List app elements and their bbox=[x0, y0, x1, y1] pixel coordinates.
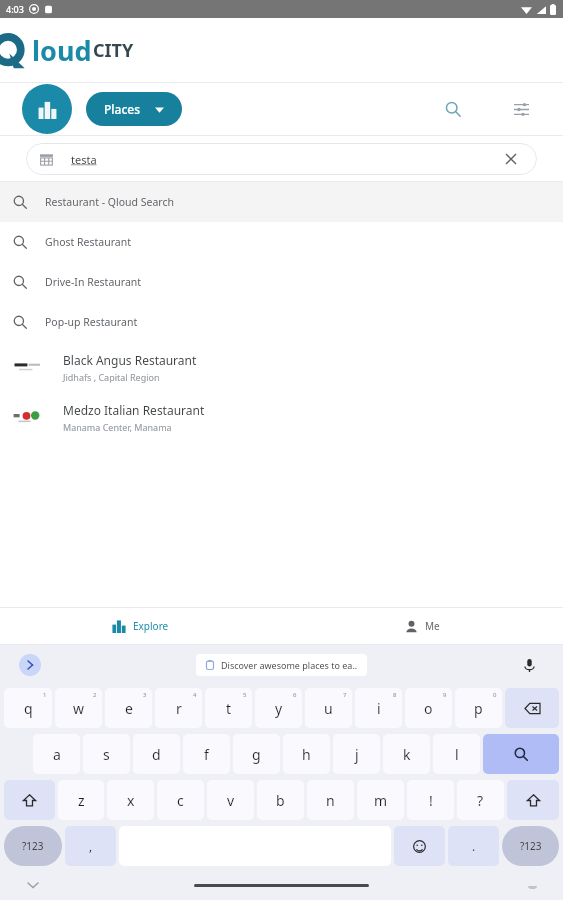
button[interactable]: ?123 bbox=[502, 826, 559, 866]
staticText: 3 bbox=[143, 691, 147, 699]
button[interactable]: c bbox=[157, 780, 204, 820]
button[interactable]: v bbox=[207, 780, 254, 820]
button[interactable]: testa bbox=[26, 143, 537, 175]
button[interactable]: More suggestions bbox=[19, 654, 41, 676]
button[interactable]: City bbox=[22, 84, 72, 134]
button[interactable]: j bbox=[333, 734, 380, 774]
button[interactable]: ! bbox=[407, 780, 454, 820]
staticText: , bbox=[89, 838, 93, 854]
button[interactable]: . bbox=[448, 826, 499, 866]
staticText: loud bbox=[32, 32, 92, 69]
button[interactable]: Discover awesome places to ea.. bbox=[196, 654, 367, 676]
button[interactable]: f bbox=[183, 734, 230, 774]
staticText: ?123 bbox=[22, 839, 44, 853]
button[interactable]: Filter bbox=[501, 89, 541, 129]
button[interactable]: Recents bbox=[523, 876, 541, 894]
staticText: d bbox=[152, 745, 161, 764]
staticText: testa bbox=[71, 152, 97, 167]
staticText: 5 bbox=[243, 691, 247, 699]
button[interactable]: y bbox=[255, 688, 302, 728]
staticText: . bbox=[472, 838, 476, 854]
button[interactable]: z bbox=[58, 780, 104, 820]
button[interactable]: Shift bbox=[4, 780, 55, 820]
staticText: ?123 bbox=[520, 839, 542, 853]
staticText: Manama Center, Manama bbox=[63, 421, 172, 433]
staticText: u bbox=[324, 699, 333, 718]
staticText: j bbox=[355, 745, 359, 764]
button[interactable]: n bbox=[307, 780, 354, 820]
button[interactable]: s bbox=[83, 734, 130, 774]
staticText: Black Angus Restaurant bbox=[63, 352, 197, 368]
button[interactable]: Clear bbox=[499, 147, 523, 171]
button[interactable]: m bbox=[357, 780, 404, 820]
staticText: k bbox=[403, 745, 411, 764]
staticText: x bbox=[127, 791, 135, 810]
button[interactable]: Voice input bbox=[516, 652, 542, 678]
button[interactable]: Search bbox=[433, 89, 473, 129]
staticText: 6 bbox=[293, 691, 297, 699]
button[interactable]: e bbox=[105, 688, 152, 728]
button[interactable]: Me bbox=[281, 608, 563, 644]
staticText: g bbox=[252, 745, 261, 764]
button[interactable]: Drive-In Restaurant bbox=[0, 262, 563, 302]
button[interactable]: Search bbox=[483, 734, 559, 774]
button[interactable]: k bbox=[383, 734, 430, 774]
staticText: n bbox=[326, 791, 335, 810]
button[interactable]: o bbox=[405, 688, 452, 728]
staticText: Restaurant - Qloud Search bbox=[45, 195, 174, 209]
button[interactable]: q bbox=[4, 688, 52, 728]
button[interactable]: x bbox=[107, 780, 154, 820]
staticText: y bbox=[275, 699, 283, 718]
staticText: f bbox=[204, 745, 209, 764]
staticText: s bbox=[103, 745, 110, 764]
button[interactable]: Restaurant - Qloud Search bbox=[0, 182, 563, 222]
staticText: 8 bbox=[393, 691, 397, 699]
staticText: i bbox=[377, 699, 381, 718]
button[interactable]: ?123 bbox=[4, 826, 62, 866]
button[interactable]: Pop-up Restaurant bbox=[0, 302, 563, 342]
button[interactable]: a bbox=[33, 734, 80, 774]
staticText: 4 bbox=[193, 691, 197, 699]
staticText: q bbox=[24, 699, 33, 718]
staticText: CITY bbox=[93, 38, 134, 63]
button[interactable]: r bbox=[155, 688, 202, 728]
button[interactable]: t bbox=[205, 688, 252, 728]
staticText: ? bbox=[477, 791, 484, 810]
staticText: r bbox=[176, 699, 182, 718]
staticText: Places bbox=[104, 101, 141, 117]
staticText: m bbox=[374, 791, 388, 810]
button[interactable]: Shift bbox=[507, 780, 559, 820]
button[interactable]: Ghost Restaurant bbox=[0, 222, 563, 262]
button[interactable]: Backspace bbox=[505, 688, 559, 728]
button[interactable]: Hide keyboard bbox=[22, 874, 44, 896]
button[interactable]: g bbox=[233, 734, 280, 774]
staticText: Medzo Italian Restaurant bbox=[63, 402, 205, 418]
staticText: z bbox=[78, 791, 85, 810]
button[interactable]: Places bbox=[86, 92, 182, 126]
button[interactable]: Medzo Italian Restaurant bbox=[0, 392, 563, 442]
staticText: 4:03 bbox=[6, 3, 24, 15]
button[interactable]: Explore bbox=[0, 608, 281, 644]
staticText: Discover awesome places to ea.. bbox=[221, 659, 358, 671]
button[interactable]: ? bbox=[457, 780, 504, 820]
button[interactable]: w bbox=[55, 688, 102, 728]
staticText: Drive-In Restaurant bbox=[45, 275, 142, 289]
button[interactable]: , bbox=[65, 826, 116, 866]
staticText: Jidhafs , Capital Region bbox=[63, 371, 160, 383]
button[interactable]: l bbox=[433, 734, 480, 774]
button[interactable]: i bbox=[355, 688, 402, 728]
button[interactable]: Emoji bbox=[394, 826, 445, 866]
staticText: Explore bbox=[133, 619, 169, 633]
button[interactable]: u bbox=[305, 688, 352, 728]
staticText: Me bbox=[425, 619, 440, 633]
staticText: Ghost Restaurant bbox=[45, 235, 131, 249]
button[interactable]: b bbox=[257, 780, 304, 820]
staticText: h bbox=[302, 745, 311, 764]
button[interactable]: d bbox=[133, 734, 180, 774]
button[interactable]: Black Angus Restaurant bbox=[0, 342, 563, 392]
staticText: 9 bbox=[443, 691, 447, 699]
button[interactable]: h bbox=[283, 734, 330, 774]
staticText: e bbox=[125, 699, 133, 718]
button[interactable]: p bbox=[455, 688, 502, 728]
